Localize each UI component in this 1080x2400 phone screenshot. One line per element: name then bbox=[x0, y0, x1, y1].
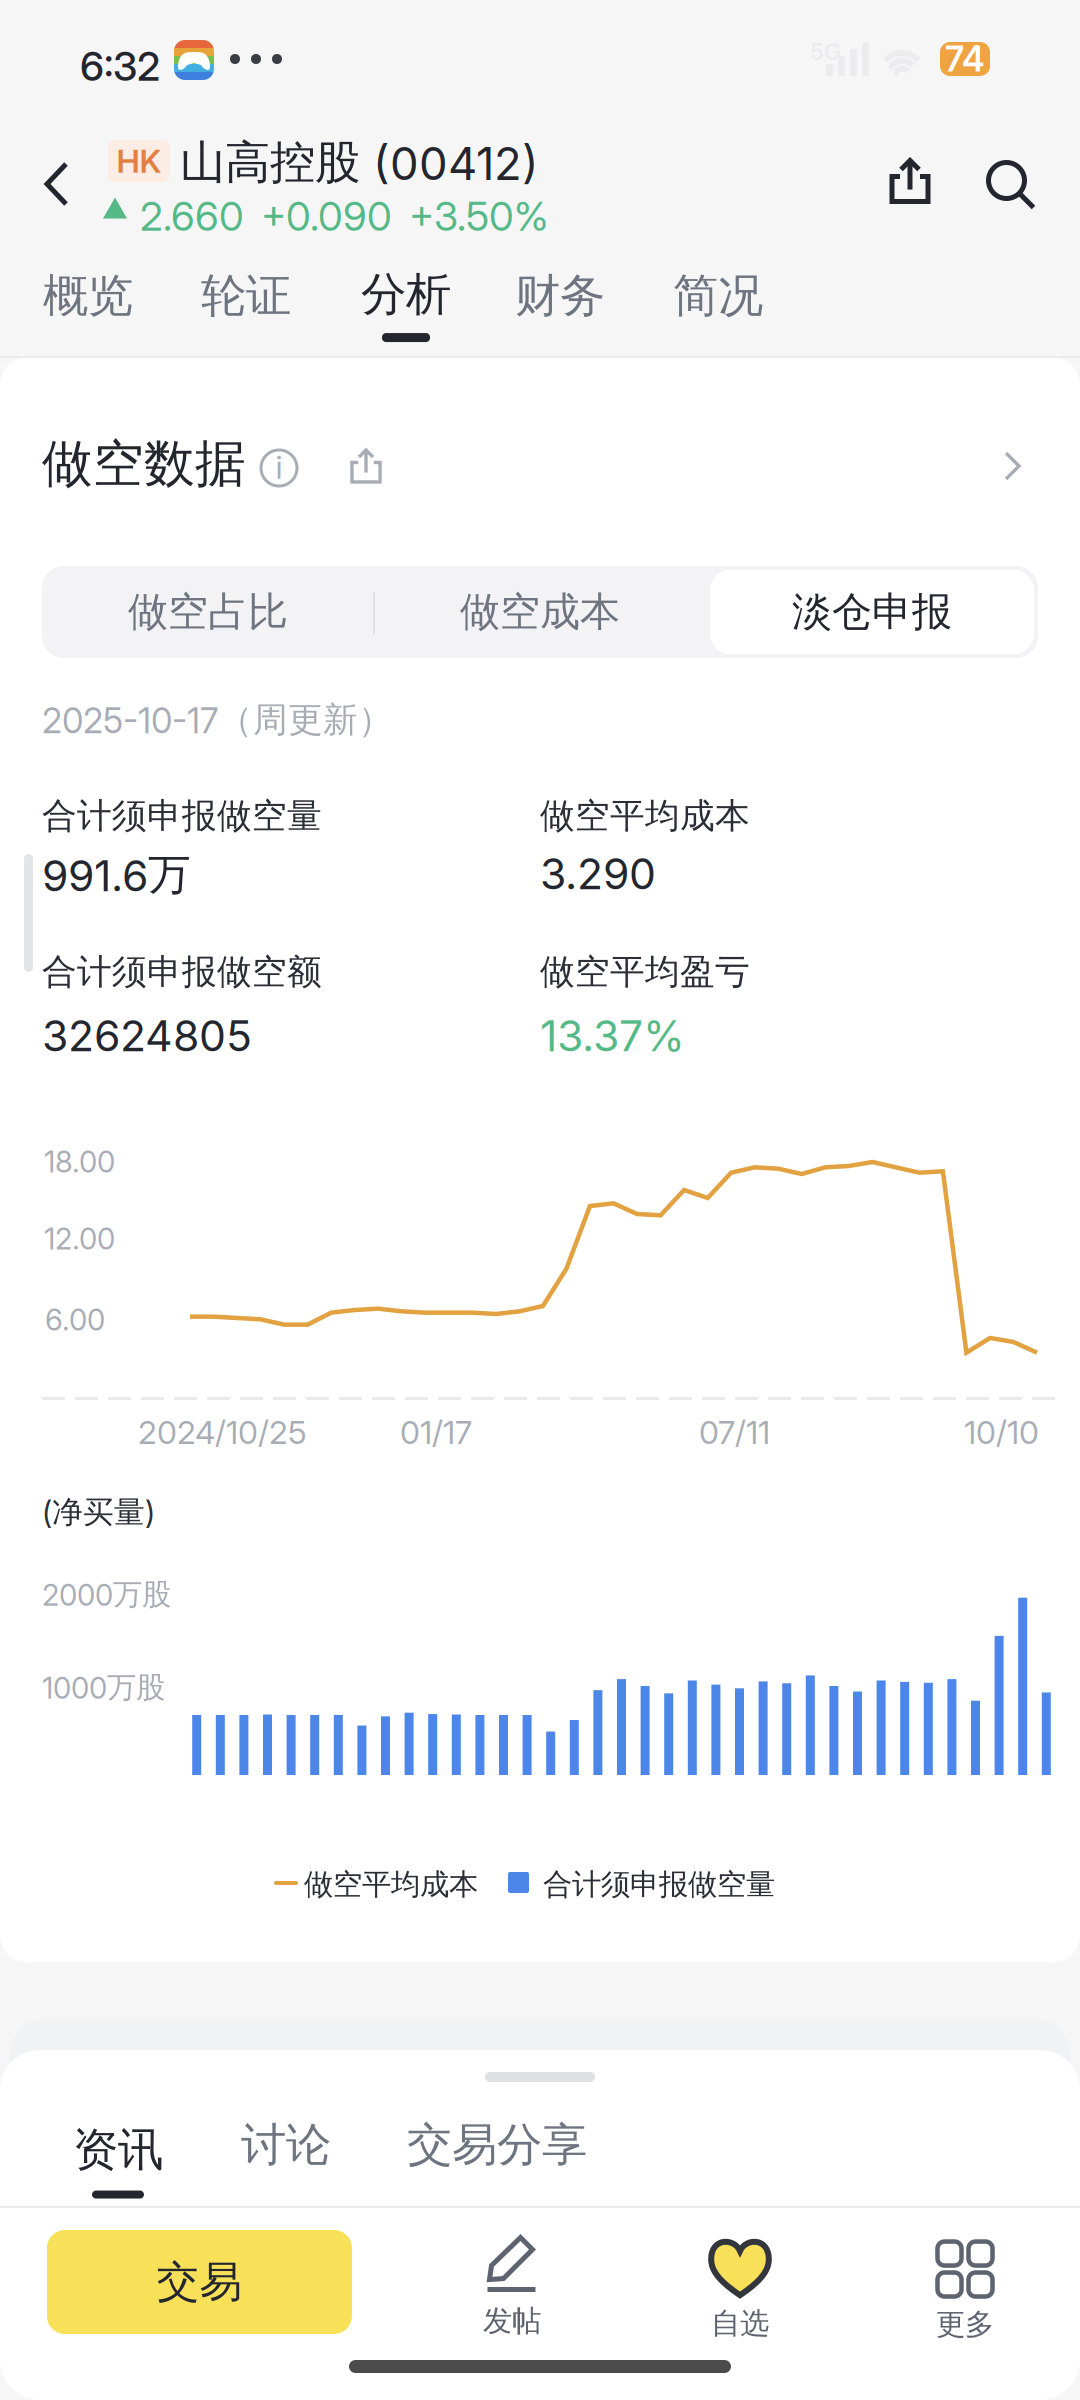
button[interactable]: 财务 bbox=[508, 260, 612, 332]
staticText: +3.50% bbox=[409, 192, 548, 240]
staticText: i bbox=[275, 448, 282, 486]
staticText: 合计须申报做空额 bbox=[42, 950, 322, 994]
staticText: 更多 bbox=[936, 2306, 994, 2343]
staticText: 991.6万 bbox=[42, 848, 191, 902]
staticText: HK bbox=[116, 142, 161, 180]
button[interactable]: 交易 bbox=[47, 2230, 352, 2334]
staticText: +0.090 bbox=[261, 192, 392, 240]
staticText: 32624805 bbox=[42, 1010, 252, 1062]
button[interactable]: 交易分享 bbox=[402, 2112, 592, 2178]
staticText: 做空平均成本 bbox=[304, 1866, 478, 1903]
staticText: 74 bbox=[945, 38, 985, 80]
staticText: (净买量) bbox=[42, 1493, 155, 1532]
button[interactable]: 讨论 bbox=[236, 2112, 336, 2178]
staticText: 轮证 bbox=[201, 267, 291, 324]
staticText: 5G bbox=[810, 38, 841, 65]
staticText: 山高控股 (00412) bbox=[180, 134, 539, 191]
staticText: 6.00 bbox=[45, 1302, 105, 1337]
staticText: 合计须申报做空量 bbox=[543, 1866, 775, 1903]
staticText: 07/11 bbox=[699, 1413, 770, 1452]
button[interactable]: 轮证 bbox=[194, 260, 298, 332]
button[interactable]: 资讯 bbox=[68, 2112, 168, 2208]
button[interactable]: 做空成本 bbox=[374, 566, 706, 658]
staticText: 发帖 bbox=[483, 2302, 541, 2339]
staticText: 做空数据 bbox=[42, 432, 246, 496]
staticText: 交易 bbox=[156, 2255, 242, 2309]
button[interactable]: See more bbox=[991, 446, 1033, 486]
staticText: 2.660 bbox=[140, 192, 244, 240]
button[interactable]: 更多 bbox=[890, 2248, 1040, 2336]
button[interactable]: Share bbox=[870, 145, 950, 217]
staticText: 12.00 bbox=[44, 1221, 115, 1256]
button[interactable]: 发帖 bbox=[437, 2238, 587, 2336]
staticText: 自选 bbox=[711, 2305, 769, 2342]
button[interactable]: 分析 bbox=[352, 258, 460, 350]
button[interactable]: Back bbox=[20, 148, 92, 220]
staticText: 10/10 bbox=[964, 1413, 1039, 1452]
staticText: 简况 bbox=[673, 267, 763, 324]
button[interactable]: 淡仓申报 bbox=[710, 570, 1034, 654]
staticText: 做空平均盈亏 bbox=[540, 950, 750, 994]
button[interactable]: 简况 bbox=[666, 260, 770, 332]
staticText: 2024/10/25 bbox=[138, 1413, 307, 1452]
staticText: 做空平均成本 bbox=[540, 794, 750, 838]
staticText: 讨论 bbox=[241, 2116, 331, 2173]
staticText: 资讯 bbox=[73, 2121, 163, 2178]
button[interactable]: 做空占比 bbox=[42, 566, 374, 658]
button[interactable]: Info bbox=[255, 444, 303, 492]
staticText: 淡仓申报 bbox=[792, 587, 952, 637]
staticText: 交易分享 bbox=[407, 2116, 587, 2173]
staticText: 概览 bbox=[43, 267, 133, 324]
button[interactable]: Share short data bbox=[340, 440, 392, 492]
staticText: 2025-10-17（周更新） bbox=[42, 698, 393, 742]
button[interactable]: 概览 bbox=[36, 260, 140, 332]
staticText: 2000万股 bbox=[42, 1576, 171, 1613]
staticText: 做空成本 bbox=[460, 587, 620, 637]
staticText: 18.00 bbox=[44, 1144, 115, 1179]
staticText: 6:32 bbox=[80, 42, 160, 90]
button[interactable]: Search bbox=[974, 150, 1050, 222]
staticText: 分析 bbox=[361, 266, 451, 323]
staticText: 3.290 bbox=[540, 848, 656, 900]
staticText: 合计须申报做空量 bbox=[42, 794, 322, 838]
staticText: 财务 bbox=[515, 267, 605, 324]
staticText: 1000万股 bbox=[42, 1669, 165, 1706]
staticText: 13.37% bbox=[540, 1010, 685, 1062]
staticText: 做空占比 bbox=[128, 587, 288, 637]
button[interactable]: 自选 bbox=[665, 2244, 815, 2336]
staticText: 01/17 bbox=[400, 1413, 472, 1452]
